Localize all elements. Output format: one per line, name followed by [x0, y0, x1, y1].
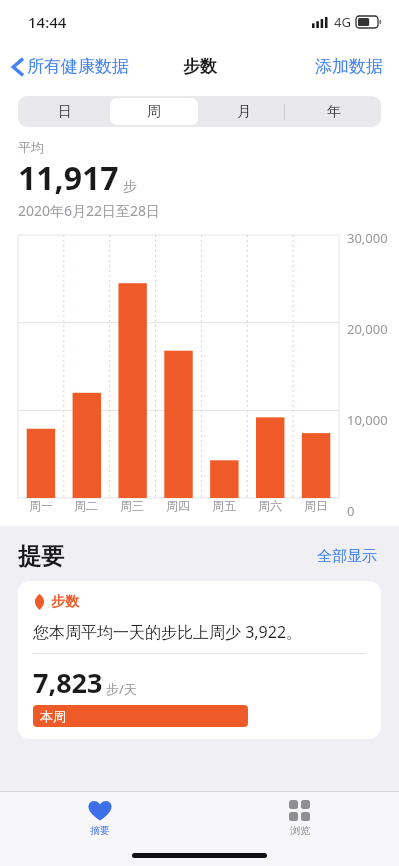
staticText: 周三 — [120, 498, 144, 513]
staticText: 周 — [147, 103, 161, 121]
staticText: 周日 — [304, 498, 328, 513]
staticText: 步 — [123, 178, 137, 196]
staticText: 14:44 — [28, 12, 67, 32]
button[interactable]: 添加数据 — [299, 50, 399, 83]
staticText: 7,823 — [33, 664, 103, 701]
staticText: 20,000 — [347, 320, 388, 338]
staticText: 所有健康数据 — [27, 56, 129, 77]
staticText: 提要 — [18, 542, 64, 571]
staticText: 月 — [237, 103, 251, 121]
button[interactable]: 日 — [21, 98, 108, 125]
staticText: 步数 — [183, 56, 217, 77]
staticText: 11,917 — [18, 156, 119, 200]
staticText: 浏览 — [290, 824, 310, 837]
staticText: 周四 — [166, 498, 190, 513]
staticText: 周六 — [258, 498, 282, 513]
button[interactable]: 周 — [110, 98, 198, 125]
button[interactable]: 摘要 — [0, 792, 199, 844]
staticText: 本周 — [40, 708, 66, 724]
button[interactable]: 所有健康数据 — [8, 52, 133, 81]
staticText: 0 — [347, 502, 355, 516]
staticText: 摘要 — [90, 824, 110, 837]
staticText: 平均 — [18, 139, 44, 155]
button[interactable]: 年 — [290, 98, 378, 125]
staticText: 周二 — [74, 498, 98, 513]
staticText: 您本周平均一天的步比上周少 3,922。 — [33, 621, 303, 643]
staticText: 10,000 — [347, 411, 388, 429]
button[interactable]: 月 — [200, 98, 288, 125]
button[interactable]: 全部显示 — [313, 543, 381, 570]
staticText: 30,000 — [347, 229, 388, 247]
button[interactable]: 浏览 — [199, 792, 399, 844]
staticText: 4G — [334, 13, 351, 31]
staticText: 日 — [58, 103, 72, 121]
staticText: 周一 — [29, 498, 53, 513]
staticText: 年 — [327, 103, 341, 121]
button[interactable]: 步数 — [18, 581, 381, 739]
staticText: 步/天 — [106, 680, 137, 698]
staticText: 步数 — [51, 593, 79, 611]
staticText: 2020年6月22日至28日 — [18, 201, 161, 220]
staticText: 周五 — [212, 498, 236, 513]
